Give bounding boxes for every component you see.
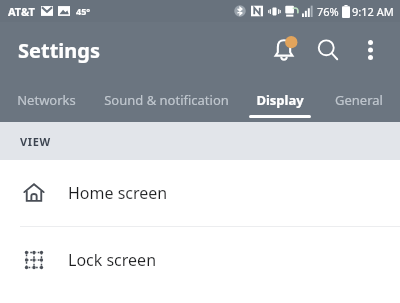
- staticText: AT&T: [8, 4, 35, 19]
- staticText: General: [335, 91, 383, 109]
- button[interactable]: Sound & notification: [92, 78, 241, 122]
- button[interactable]: Display: [241, 78, 318, 122]
- staticText: 9:12 AM: [352, 4, 394, 19]
- staticText: Home screen: [68, 182, 168, 204]
- button[interactable]: General: [318, 78, 400, 122]
- button[interactable]: Home screen: [0, 160, 400, 226]
- staticText: Networks: [17, 91, 76, 109]
- staticText: Lock screen: [68, 249, 157, 271]
- staticText: Display: [256, 91, 304, 109]
- button[interactable]: Networks: [0, 78, 92, 122]
- staticText: 45°: [76, 5, 91, 17]
- staticText: VIEW: [20, 134, 51, 149]
- staticText: 76%: [317, 4, 339, 19]
- button[interactable]: Lock screen: [0, 227, 400, 293]
- button[interactable]: More options: [350, 30, 390, 70]
- button[interactable]: Search: [306, 28, 350, 72]
- staticText: Settings: [18, 37, 100, 64]
- button[interactable]: Notifications, 3 new: [262, 28, 306, 72]
- staticText: Sound & notification: [104, 91, 229, 109]
